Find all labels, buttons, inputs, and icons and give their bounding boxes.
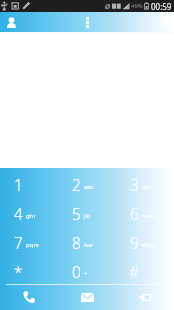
button[interactable]: More options xyxy=(77,12,97,32)
staticText: jkl xyxy=(84,212,91,220)
staticText: 8 xyxy=(72,232,81,253)
button[interactable]: * xyxy=(0,255,58,284)
staticText: 2 xyxy=(72,174,81,195)
staticText: 9 xyxy=(130,232,139,253)
button[interactable]: 3 xyxy=(116,168,174,197)
staticText: # xyxy=(129,261,140,282)
staticText: 6 xyxy=(130,203,139,224)
staticText: 1 xyxy=(14,174,23,195)
staticText: wxyz xyxy=(142,241,156,249)
staticText: 3 xyxy=(130,174,139,195)
staticText: 5 xyxy=(72,203,81,224)
button[interactable]: 8 xyxy=(58,226,116,255)
button[interactable]: 2 xyxy=(58,168,116,197)
button[interactable]: 7 xyxy=(0,226,58,255)
button[interactable]: Delete xyxy=(116,284,174,310)
button[interactable]: 6 xyxy=(116,197,174,226)
staticText: mno xyxy=(142,212,155,220)
button[interactable]: Message xyxy=(58,284,116,310)
button[interactable]: Contacts xyxy=(1,12,21,32)
staticText: abc xyxy=(84,183,94,191)
staticText: ghi xyxy=(26,212,35,220)
staticText: 49% xyxy=(131,2,143,10)
staticText: pqrs xyxy=(26,241,39,249)
staticText: + xyxy=(84,270,88,278)
staticText: 7 xyxy=(14,232,23,253)
button[interactable]: 5 xyxy=(58,197,116,226)
staticText: 4 xyxy=(14,203,23,224)
button[interactable]: 9 xyxy=(116,226,174,255)
button[interactable]: # xyxy=(116,255,174,284)
button[interactable]: Call xyxy=(0,284,58,310)
button[interactable]: 4 xyxy=(0,197,58,226)
staticText: 0 xyxy=(72,261,81,282)
staticText: tuv xyxy=(84,241,93,249)
button[interactable]: Call log xyxy=(154,12,174,32)
staticText: * xyxy=(14,261,23,282)
button[interactable]: 1 xyxy=(0,168,58,197)
staticText: 00:59 xyxy=(151,1,172,12)
button[interactable]: 0 xyxy=(58,255,116,284)
staticText: def xyxy=(142,183,152,191)
